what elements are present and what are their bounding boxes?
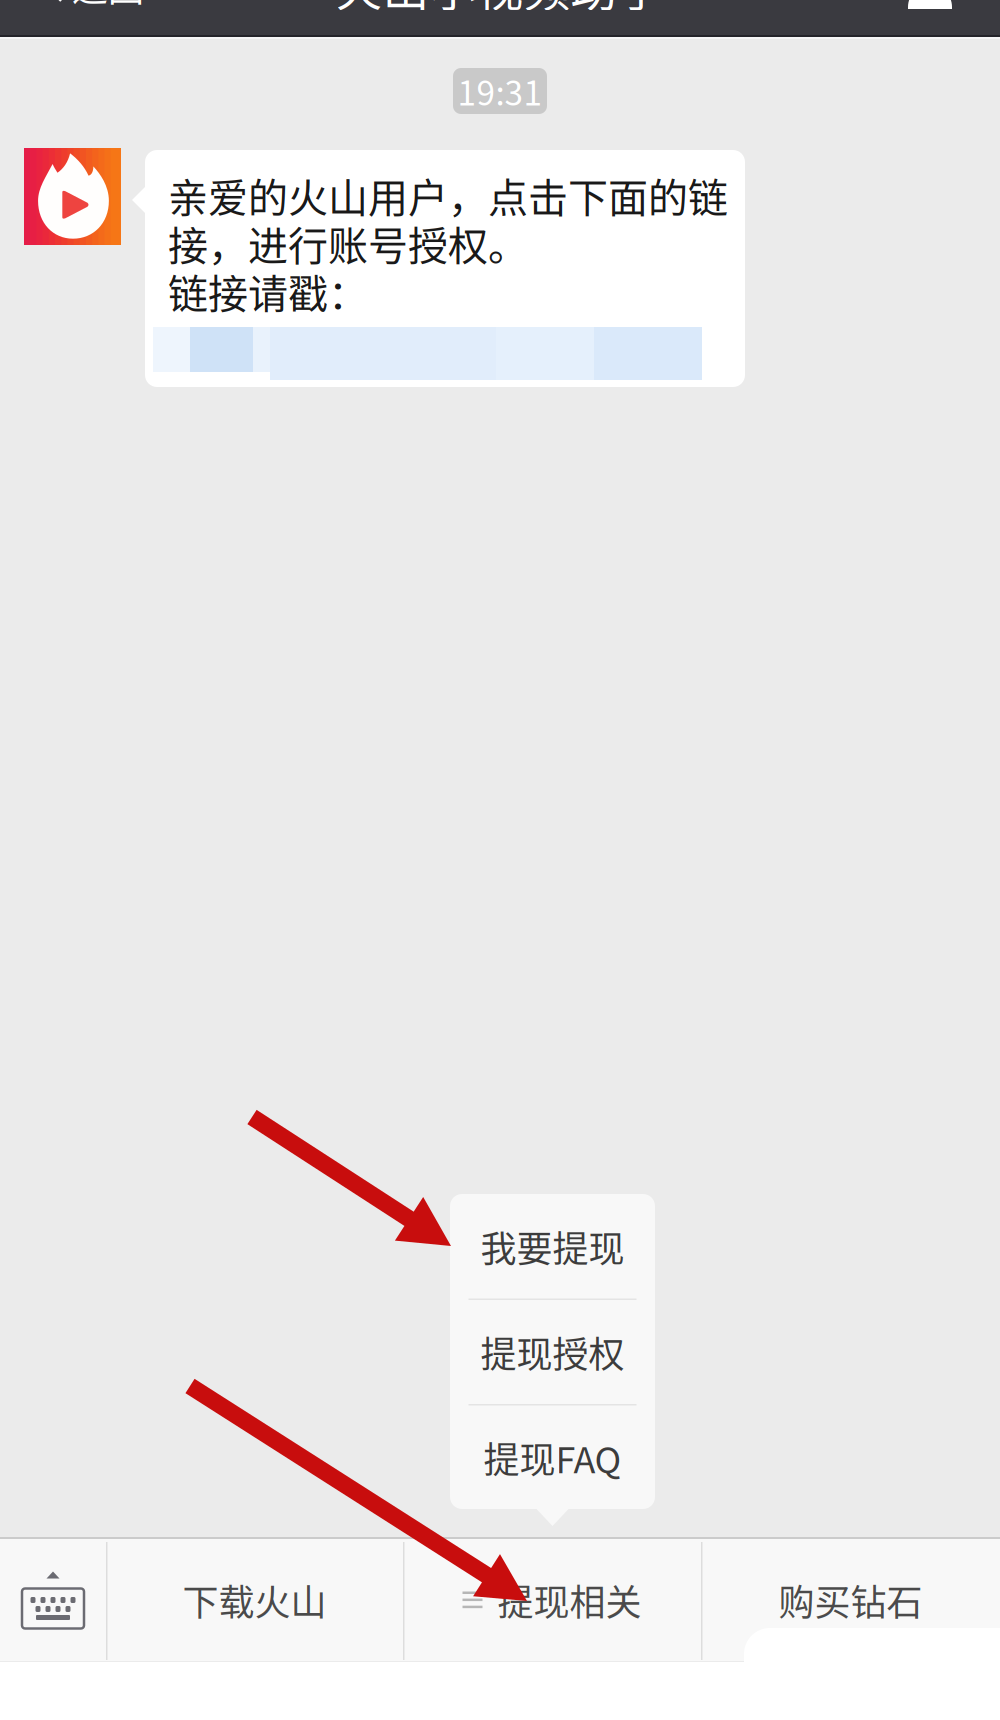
button[interactable]: 提现相关 [403,1539,701,1661]
staticText: 提现授权 [480,1326,624,1378]
staticText: 提现相关 [497,1574,641,1626]
staticText: 链接请戳： [168,262,368,320]
button[interactable]: 我要提现 [450,1194,655,1298]
staticText: 19:31 [457,67,542,115]
staticText: 亲爱的火山用户，点击下面的链 [168,166,728,224]
button[interactable]: 下载火山 [106,1539,403,1661]
staticText: 购买钻石 [778,1574,922,1626]
staticText: 提现FAQ [483,1431,621,1483]
button[interactable]: 提现FAQ [450,1405,655,1509]
button[interactable]: 返回 [0,0,208,31]
button[interactable]: Contact info [885,0,975,28]
staticText: 我要提现 [480,1220,624,1272]
staticText: 返回 [72,0,144,12]
staticText: 接，进行账号授权。 [168,214,528,272]
staticText: 下载火山 [182,1574,326,1626]
button[interactable]: 购买钻石 [701,1539,1000,1661]
button[interactable]: 提现授权 [450,1300,655,1404]
button[interactable]: Keyboard [0,1539,106,1661]
staticText: 火山小视频助手 [335,0,664,20]
